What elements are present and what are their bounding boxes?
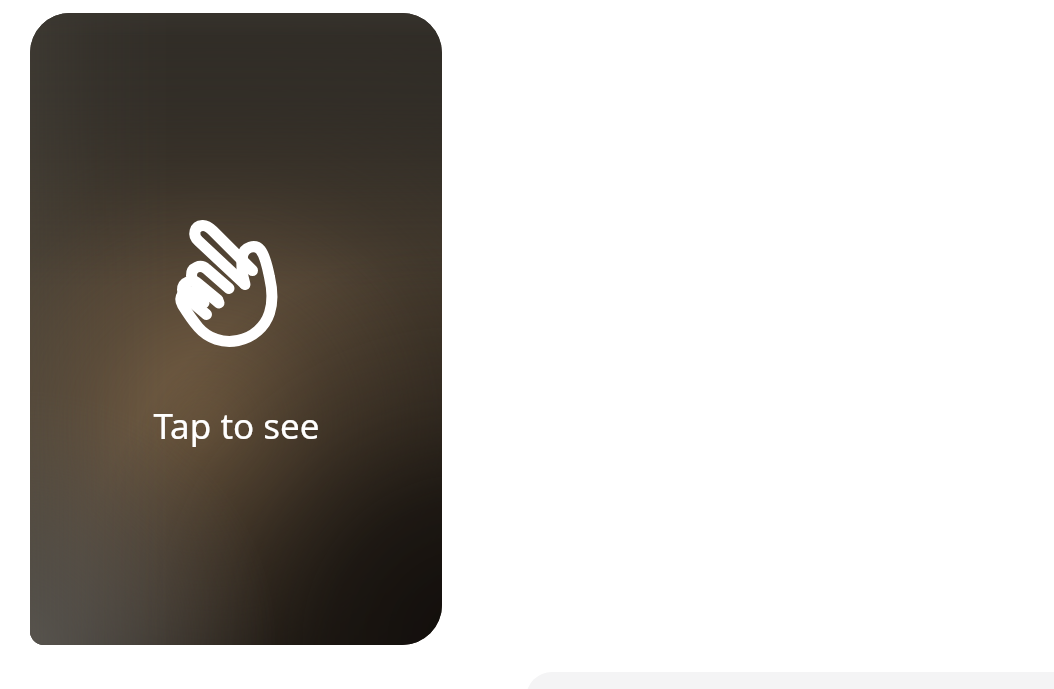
button[interactable]: Tap to see <box>30 13 442 645</box>
other: Tap to see <box>172 222 288 354</box>
staticText: Tap to see <box>153 402 320 450</box>
